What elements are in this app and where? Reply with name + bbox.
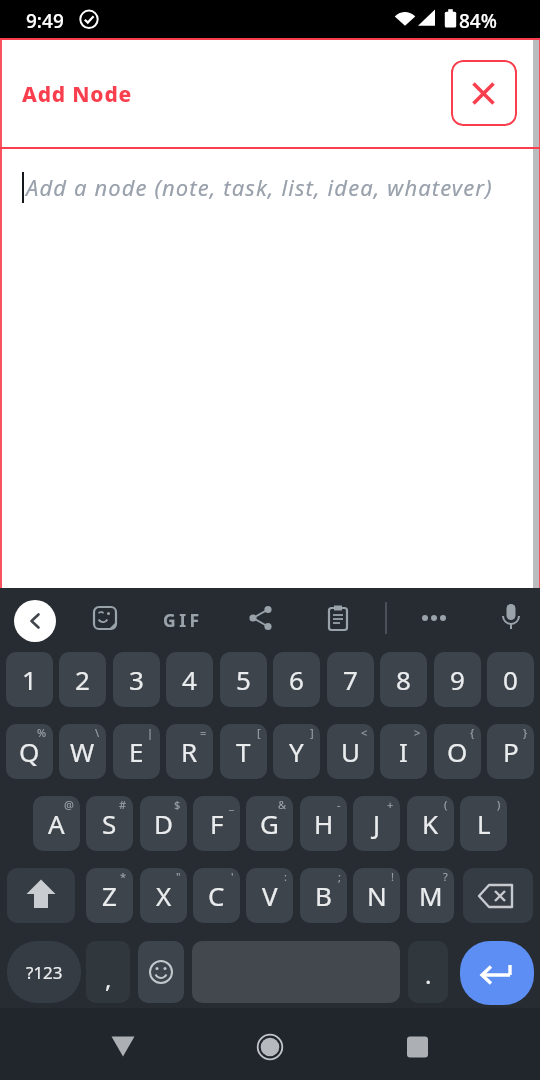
staticText: K — [422, 806, 439, 841]
button[interactable]: GIF — [163, 608, 203, 632]
button[interactable]: U — [327, 724, 374, 779]
staticText: M — [419, 878, 443, 913]
staticText: 3 — [129, 662, 144, 697]
staticText: I — [399, 734, 408, 769]
staticText: R — [181, 734, 198, 769]
button[interactable] — [138, 941, 184, 1003]
button[interactable]: D — [140, 796, 187, 851]
button[interactable] — [14, 600, 56, 642]
button[interactable]: 4 — [166, 652, 213, 707]
staticText: | — [147, 725, 154, 740]
staticText: T — [236, 734, 251, 769]
button[interactable] — [84, 597, 126, 639]
button[interactable]: N — [353, 868, 400, 923]
staticText: = — [200, 725, 207, 740]
staticText: 9:49 — [26, 8, 64, 34]
staticText: U — [341, 734, 361, 769]
button[interactable]: 2 — [59, 652, 106, 707]
staticText: < — [361, 725, 368, 740]
button[interactable]: ?123 — [7, 941, 81, 1003]
button[interactable] — [460, 941, 534, 1005]
button[interactable]: , — [86, 941, 130, 1003]
button[interactable]: 0 — [487, 652, 534, 707]
staticText: 5 — [236, 662, 251, 697]
staticText: } — [523, 725, 528, 740]
button[interactable] — [7, 868, 75, 923]
staticText: ; — [338, 869, 341, 884]
button[interactable]: Z — [86, 868, 133, 923]
staticText: 2 — [75, 662, 90, 697]
staticText: Add a node (note, task, list, idea, what… — [26, 172, 493, 202]
button[interactable]: I — [380, 724, 427, 779]
staticText: & — [278, 797, 287, 812]
button[interactable]: S — [86, 796, 133, 851]
staticText: N — [367, 878, 387, 913]
staticText: D — [154, 806, 173, 841]
button[interactable]: . — [408, 941, 448, 1003]
button[interactable] — [463, 868, 533, 923]
staticText: ) — [497, 797, 501, 812]
button[interactable]: 9 — [434, 652, 481, 707]
button[interactable]: G — [246, 796, 293, 851]
staticText: + — [387, 797, 394, 812]
staticText: C — [208, 878, 225, 913]
staticText: 8 — [396, 662, 411, 697]
button[interactable]: A — [33, 796, 80, 851]
button[interactable] — [413, 597, 455, 639]
button[interactable] — [451, 60, 517, 126]
button[interactable]: K — [407, 796, 454, 851]
button[interactable]: 1 — [6, 652, 53, 707]
button[interactable]: V — [246, 868, 293, 923]
button[interactable]: 6 — [273, 652, 320, 707]
staticText: * — [120, 869, 127, 884]
staticText: S — [102, 806, 117, 841]
button[interactable]: O — [434, 724, 481, 779]
staticText: H — [314, 806, 334, 841]
button[interactable]: H — [300, 796, 347, 851]
staticText: G — [260, 806, 279, 841]
button[interactable]: W — [59, 724, 106, 779]
button[interactable]: B — [300, 868, 347, 923]
button[interactable] — [240, 597, 282, 639]
staticText: 4 — [182, 662, 197, 697]
staticText: J — [373, 806, 381, 841]
button[interactable]: M — [407, 868, 454, 923]
button[interactable]: L — [460, 796, 507, 851]
staticText: " — [176, 869, 181, 884]
button[interactable]: 7 — [327, 652, 374, 707]
staticText: F — [210, 806, 224, 841]
staticText: $ — [174, 797, 181, 812]
staticText: % — [37, 725, 47, 740]
button[interactable]: Q — [6, 724, 53, 779]
staticText: V — [262, 878, 278, 913]
button[interactable]: J — [353, 796, 400, 851]
button[interactable]: 3 — [113, 652, 160, 707]
staticText: B — [315, 878, 332, 913]
staticText: Y — [289, 734, 304, 769]
button[interactable]: Y — [273, 724, 320, 779]
button[interactable]: T — [220, 724, 267, 779]
button[interactable] — [2, 149, 532, 588]
staticText: . — [425, 958, 432, 991]
staticText: 6 — [289, 662, 304, 697]
button[interactable] — [317, 597, 359, 639]
staticText: ? — [443, 869, 448, 884]
button[interactable] — [240, 1017, 300, 1077]
button[interactable] — [93, 1017, 153, 1077]
staticText: - — [337, 797, 341, 812]
button[interactable]: 8 — [380, 652, 427, 707]
staticText: 9 — [450, 662, 465, 697]
button[interactable]: R — [166, 724, 213, 779]
staticText: , — [105, 962, 112, 995]
button[interactable] — [490, 597, 532, 639]
button[interactable]: P — [487, 724, 534, 779]
button[interactable]: X — [140, 868, 187, 923]
button[interactable] — [387, 1017, 447, 1077]
staticText: 0 — [503, 662, 518, 697]
staticText: # — [119, 797, 127, 812]
button[interactable]: C — [193, 868, 240, 923]
button[interactable]: E — [113, 724, 160, 779]
button[interactable]: F — [193, 796, 240, 851]
button[interactable]: 5 — [220, 652, 267, 707]
